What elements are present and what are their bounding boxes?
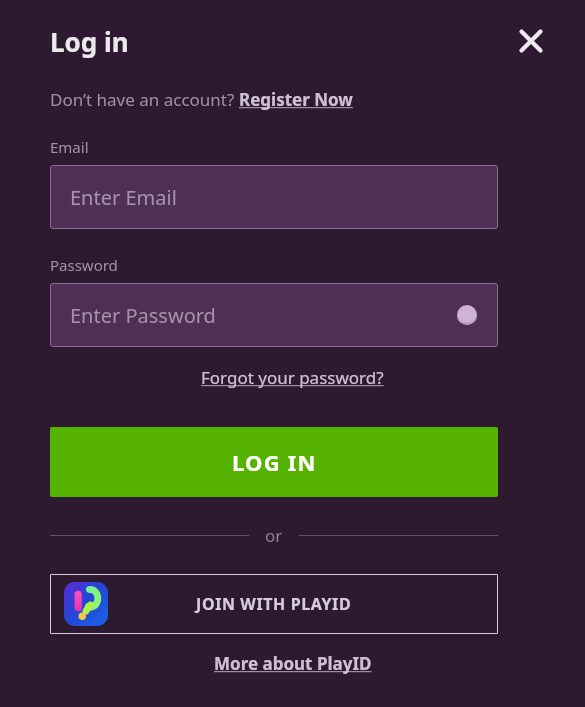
button[interactable]: Close	[507, 17, 555, 65]
staticText: Register Now	[239, 88, 353, 111]
button[interactable]: Enter Email	[50, 165, 498, 229]
button[interactable]: JOIN WITH PLAYID	[50, 574, 498, 634]
staticText: Password	[50, 255, 118, 275]
staticText: Enter Email	[70, 184, 177, 211]
button[interactable]: LOG IN	[50, 427, 498, 497]
staticText: More about PlayID	[214, 652, 372, 675]
staticText: Email	[50, 137, 89, 157]
staticText: Enter Password	[70, 302, 216, 329]
button[interactable]: Enter Password	[50, 283, 498, 347]
staticText: LOG IN	[232, 447, 317, 477]
button[interactable]: Show password	[450, 298, 484, 332]
staticText: or	[265, 524, 283, 547]
button[interactable]: More about PlayID	[214, 652, 372, 675]
staticText: JOIN WITH PLAYID	[196, 593, 352, 615]
button[interactable]: Register Now	[239, 88, 353, 111]
staticText: Don’t have an account?	[50, 88, 239, 111]
button[interactable]: Forgot your password?	[201, 366, 384, 389]
staticText: Log in	[50, 24, 129, 59]
staticText: Forgot your password?	[201, 366, 384, 389]
